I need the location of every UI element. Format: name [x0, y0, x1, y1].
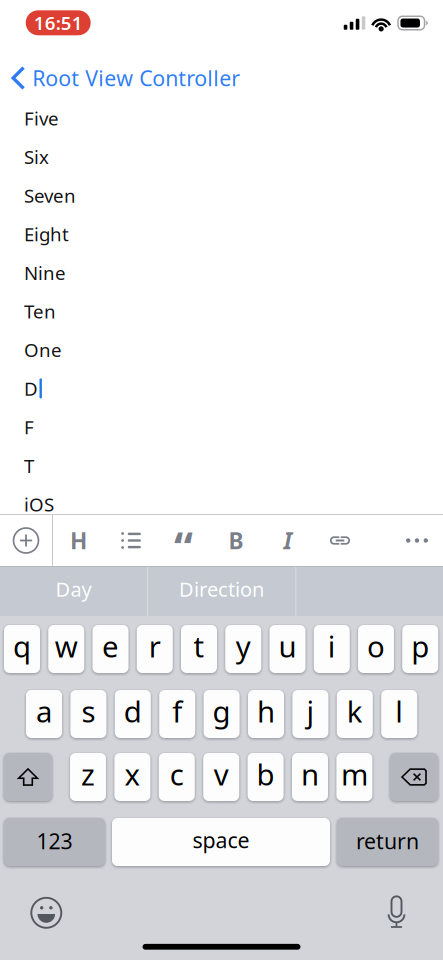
button[interactable]: j — [292, 690, 328, 738]
staticText: One — [24, 337, 62, 362]
button[interactable]: Heading — [52, 515, 104, 566]
staticText: p — [411, 626, 429, 665]
staticText: g — [213, 691, 231, 730]
staticText: l — [395, 691, 403, 730]
staticText: k — [347, 691, 363, 730]
staticText: I — [283, 525, 292, 555]
button[interactable]: q — [4, 625, 40, 673]
staticText: 16:51 — [34, 10, 83, 35]
button[interactable]: m — [336, 753, 372, 801]
button[interactable]: d — [115, 690, 151, 738]
button[interactable]: Bold — [210, 515, 262, 566]
button[interactable]: r — [137, 625, 173, 673]
button[interactable]: i — [314, 625, 350, 673]
staticText: v — [214, 754, 229, 793]
button[interactable]: return — [337, 818, 438, 866]
staticText: y — [236, 626, 251, 665]
button[interactable]: Emoji — [22, 889, 70, 937]
button[interactable]: h — [248, 690, 284, 738]
staticText: Root View Controller — [32, 64, 240, 92]
button[interactable]: Insert — [0, 515, 52, 566]
staticText: i — [328, 626, 336, 665]
button[interactable]: Shift — [4, 753, 52, 801]
button[interactable]: y — [225, 625, 261, 673]
button[interactable]: x — [114, 753, 150, 801]
button[interactable]: e — [92, 625, 128, 673]
staticText: x — [124, 754, 140, 793]
staticText: w — [55, 626, 78, 665]
staticText: Nine — [24, 260, 66, 285]
staticText: b — [257, 754, 275, 793]
button[interactable]: Root View Controller — [0, 58, 248, 98]
staticText: u — [278, 626, 296, 665]
button[interactable]: Day — [0, 564, 147, 613]
button[interactable]: p — [402, 625, 438, 673]
button[interactable]: t — [181, 625, 217, 673]
staticText: Seven — [24, 183, 76, 208]
staticText: Day — [55, 576, 91, 602]
button[interactable]: Direction — [148, 564, 295, 613]
staticText: Six — [24, 144, 49, 169]
staticText: t — [193, 626, 204, 665]
staticText: o — [367, 626, 385, 665]
button[interactable]: space — [112, 818, 330, 866]
staticText: F — [24, 415, 34, 439]
staticText: q — [13, 626, 31, 665]
button[interactable]: l — [381, 690, 417, 738]
button[interactable]: s — [70, 690, 106, 738]
staticText: j — [306, 691, 314, 730]
staticText: m — [341, 754, 368, 793]
staticText: “ — [174, 518, 193, 575]
button[interactable]: g — [204, 690, 240, 738]
staticText: H — [70, 525, 87, 555]
button[interactable]: Link — [314, 515, 366, 566]
staticText: n — [301, 754, 319, 793]
button[interactable]: Delete — [390, 753, 438, 801]
button[interactable]: v — [203, 753, 239, 801]
button[interactable]: c — [159, 753, 195, 801]
staticText: D — [24, 376, 38, 401]
staticText: c — [170, 754, 184, 793]
staticText: return — [356, 827, 419, 855]
button[interactable]: a — [26, 690, 62, 738]
staticText: Ten — [24, 299, 56, 324]
button[interactable]: b — [248, 753, 284, 801]
button[interactable]: Dictation — [372, 889, 420, 937]
button[interactable]: Block quote — [157, 515, 209, 566]
staticText: a — [36, 691, 52, 730]
button[interactable]: n — [292, 753, 328, 801]
staticText: 123 — [36, 827, 72, 855]
button[interactable]: Bulleted list — [105, 515, 157, 566]
staticText: Direction — [179, 576, 264, 602]
staticText: r — [149, 626, 161, 665]
button[interactable]: z — [70, 753, 106, 801]
button[interactable]: f — [159, 690, 195, 738]
staticText: T — [24, 453, 34, 478]
staticText: space — [192, 826, 249, 854]
button[interactable]: k — [337, 690, 373, 738]
staticText: h — [257, 691, 275, 730]
staticText: B — [228, 525, 243, 555]
staticText: e — [102, 626, 119, 665]
button[interactable]: 123 — [4, 818, 105, 866]
button[interactable]: Italic — [262, 515, 314, 566]
button[interactable]: o — [358, 625, 394, 673]
staticText: z — [81, 754, 95, 793]
staticText: Eight — [24, 222, 69, 246]
button[interactable]: w — [48, 625, 84, 673]
button[interactable]: More — [391, 515, 443, 566]
button[interactable]: u — [269, 625, 305, 673]
staticText: s — [81, 691, 95, 730]
staticText: Five — [24, 106, 59, 131]
staticText: f — [172, 691, 182, 730]
staticText: iOS — [24, 492, 54, 517]
staticText: d — [124, 691, 142, 730]
